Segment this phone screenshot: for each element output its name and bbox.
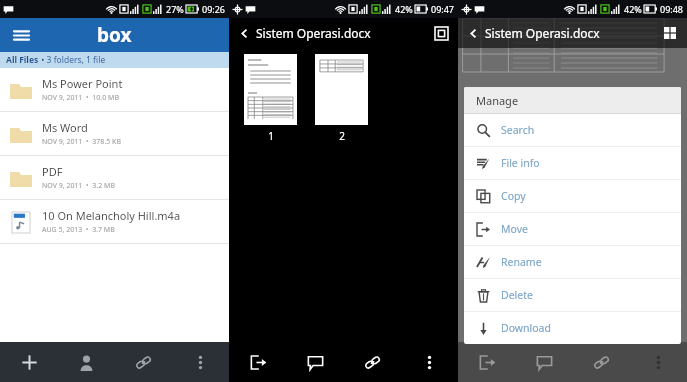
button[interactable]: More options (630, 342, 687, 382)
staticText: 09:48 (660, 3, 684, 15)
button[interactable]: More options (401, 342, 458, 382)
button[interactable] (244, 54, 297, 125)
staticText: Delete (501, 288, 533, 302)
staticText: 42% (395, 3, 413, 15)
staticText: Move (501, 222, 528, 236)
button[interactable]: Delete (464, 279, 681, 311)
button[interactable]: Download (464, 312, 681, 344)
staticText: File info (501, 156, 540, 170)
button[interactable]: Move (464, 213, 681, 245)
staticText: 42% (624, 3, 642, 15)
staticText: AUG 5, 2013 • 3.7 MB (42, 225, 115, 235)
staticText: All Files (6, 54, 39, 66)
button[interactable]: Ms Power Point (0, 68, 229, 111)
staticText: 2 (339, 129, 345, 143)
staticText: 10 On Melancholy Hill.m4a (42, 208, 181, 223)
button[interactable]: PDF (0, 156, 229, 199)
staticText: 27% (166, 3, 184, 15)
button[interactable]: Search (464, 114, 681, 146)
button[interactable]: Back (464, 24, 482, 42)
button[interactable]: Comments (287, 342, 344, 382)
staticText: NOV 9, 2011 • 378.5 KB (42, 137, 121, 147)
button[interactable]: Export (458, 342, 516, 382)
staticText: Download (501, 321, 551, 335)
button[interactable]: Open navigation menu (8, 22, 34, 48)
staticText: Search (501, 123, 535, 137)
button[interactable]: More options (172, 342, 229, 382)
button[interactable]: View mode (659, 22, 681, 44)
button[interactable] (315, 54, 368, 125)
button[interactable]: Rename (464, 246, 681, 278)
staticText: NOV 9, 2011 • 3.2 MB (42, 181, 115, 191)
button[interactable]: Share link (115, 342, 172, 382)
staticText: Rename (501, 255, 542, 269)
button[interactable]: Back (235, 24, 253, 42)
staticText: Copy (501, 189, 526, 203)
button[interactable]: All Files (0, 52, 229, 68)
button[interactable]: Comments (516, 342, 573, 382)
staticText: 09:47 (431, 3, 455, 15)
button[interactable]: 10 On Melancholy Hill.m4a (0, 200, 229, 243)
staticText: Sistem Operasi.docx (256, 25, 371, 41)
staticText: Ms Word (42, 120, 88, 135)
staticText: 09:26 (202, 3, 226, 15)
staticText: Sistem Operasi.docx (485, 25, 600, 41)
button[interactable]: Copy (464, 180, 681, 212)
staticText: NOV 9, 2011 • 10.0 MB (42, 93, 119, 103)
button[interactable]: Ms Word (0, 112, 229, 155)
staticText: box (97, 22, 132, 48)
staticText: • 3 folders, 1 file (39, 54, 106, 66)
button[interactable]: File info (464, 147, 681, 179)
button[interactable]: Share link (344, 342, 401, 382)
staticText: Manage (476, 93, 519, 108)
staticText: PDF (42, 164, 63, 179)
button[interactable]: Add (0, 342, 58, 382)
staticText: Ms Power Point (42, 76, 123, 91)
staticText: 1 (268, 129, 274, 143)
button[interactable]: Export (229, 342, 287, 382)
button[interactable]: View mode (430, 22, 452, 44)
button[interactable]: Share link (573, 342, 630, 382)
button[interactable]: Contacts (58, 342, 115, 382)
